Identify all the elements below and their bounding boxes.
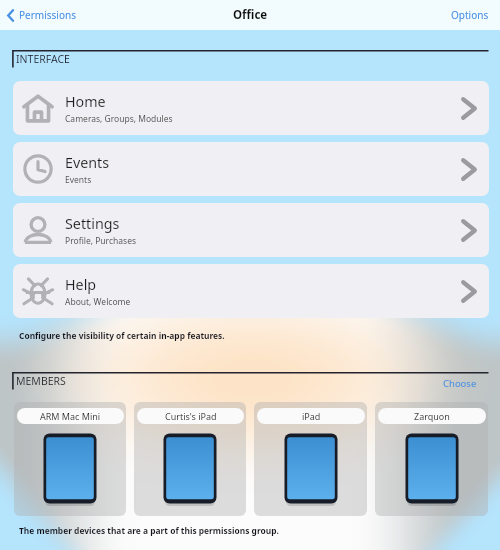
staticText: Options xyxy=(451,8,489,22)
staticText: INTERFACE xyxy=(16,52,70,66)
staticText: Help xyxy=(65,275,97,294)
button[interactable]: Permissions xyxy=(7,0,76,30)
button[interactable]: Home xyxy=(13,81,489,135)
button[interactable]: Help xyxy=(13,264,489,318)
staticText: Permissions xyxy=(19,8,76,22)
staticText: Zarquon xyxy=(414,410,450,422)
staticText: ARM Mac Mini xyxy=(40,410,101,422)
staticText: Office xyxy=(233,7,268,23)
staticText: The member devices that are a part of th… xyxy=(19,525,279,536)
button[interactable]: ARM Mac Mini xyxy=(14,402,126,516)
staticText: Settings xyxy=(65,214,120,233)
staticText: Curtis's iPad xyxy=(165,410,217,422)
staticText: iPad xyxy=(302,410,321,422)
button[interactable]: Settings xyxy=(13,203,489,257)
staticText: Configure the visibility of certain in-a… xyxy=(19,330,225,341)
staticText: About, Welcome xyxy=(65,296,131,308)
button[interactable]: iPad xyxy=(254,402,367,516)
button[interactable]: Curtis's iPad xyxy=(134,402,246,516)
button[interactable]: Choose xyxy=(443,377,477,390)
staticText: Events xyxy=(65,174,92,186)
button[interactable]: Events xyxy=(13,142,489,196)
staticText: Profile, Purchases xyxy=(65,235,136,247)
staticText: Cameras, Groups, Modules xyxy=(65,113,173,125)
staticText: Home xyxy=(65,92,106,111)
staticText: Events xyxy=(65,153,110,172)
button[interactable]: Options xyxy=(440,0,500,30)
staticText: MEMBERS xyxy=(16,374,66,388)
button[interactable]: Zarquon xyxy=(375,402,488,516)
